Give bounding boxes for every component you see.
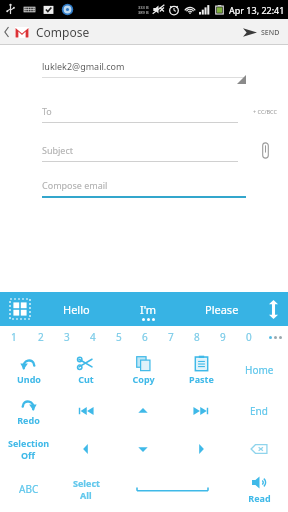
staticText: To — [42, 105, 52, 117]
staticText: 0 — [246, 330, 252, 344]
staticText: Off — [21, 449, 36, 461]
button[interactable]: SEND — [235, 23, 288, 42]
button[interactable]: + CC/BCC — [242, 96, 288, 126]
staticText: 5 — [116, 330, 122, 344]
staticText: Compose — [36, 24, 90, 40]
button[interactable]: Select — [57, 468, 115, 510]
staticText: + CC/BCC — [253, 108, 277, 115]
staticText: 4 — [90, 330, 96, 344]
staticText: 8 — [194, 330, 200, 344]
button[interactable]: Please — [185, 292, 258, 326]
button[interactable]: 6 — [132, 326, 158, 348]
staticText: Selection — [8, 437, 50, 449]
staticText: luklek2@gmail.com — [42, 60, 125, 72]
staticText: 333 B — [138, 5, 149, 10]
staticText: Apr 13, 22:41 — [229, 4, 285, 16]
button[interactable]: 5 — [106, 326, 132, 348]
button[interactable]: Space — [115, 468, 230, 510]
button[interactable]: luklek2@gmail.com — [42, 55, 246, 77]
staticText: 1 — [11, 330, 17, 344]
button[interactable]: Right — [172, 430, 230, 468]
button[interactable]: I'm — [112, 292, 185, 326]
button[interactable]: Home — [230, 348, 288, 392]
staticText: 2 — [38, 330, 44, 344]
staticText: SEND — [261, 28, 280, 38]
staticText: Copy — [132, 373, 155, 385]
staticText: All — [80, 489, 92, 501]
button[interactable]: Redo — [0, 392, 57, 430]
button[interactable]: Undo — [0, 348, 57, 392]
staticText: Compose email — [42, 179, 108, 191]
button[interactable]: 9 — [210, 326, 236, 348]
staticText: Paste — [189, 373, 214, 385]
button[interactable]: 1 — [0, 326, 27, 348]
staticText: 389 B — [138, 10, 149, 15]
button[interactable]: Keyboard layouts — [0, 292, 40, 326]
button[interactable]: Down — [114, 430, 172, 468]
staticText: Cut — [78, 373, 94, 385]
button[interactable]: Backspace — [230, 430, 288, 468]
staticText: Undo — [17, 373, 41, 385]
button[interactable]: Selection — [0, 430, 57, 468]
button[interactable]: Hello — [40, 292, 112, 326]
staticText: 6 — [142, 330, 148, 344]
staticText: Please — [205, 302, 239, 317]
staticText: 3 — [64, 330, 70, 344]
button[interactable]: End — [230, 392, 288, 430]
button[interactable]: Paste — [172, 348, 230, 392]
button[interactable]: Skip back — [57, 392, 114, 430]
staticText: I'm — [140, 302, 157, 317]
button[interactable]: ABC — [0, 468, 57, 510]
button[interactable]: 8 — [184, 326, 210, 348]
button[interactable]: Attach file — [242, 135, 288, 165]
staticText: 9 — [220, 330, 226, 344]
staticText: Redo — [17, 414, 40, 426]
button[interactable]: 3 — [54, 326, 80, 348]
button[interactable]: Expand — [258, 292, 288, 326]
button[interactable]: Copy — [114, 348, 172, 392]
button[interactable]: Up — [114, 392, 172, 430]
button[interactable]: Navigate up — [0, 20, 96, 44]
staticText: Subject — [42, 144, 74, 156]
staticText: Select — [73, 477, 100, 489]
button[interactable]: Compose email — [42, 174, 246, 196]
button[interactable]: Left — [57, 430, 114, 468]
staticText: 7 — [168, 330, 174, 344]
staticText: ABC — [19, 482, 39, 496]
button[interactable]: Read — [230, 468, 288, 510]
button[interactable]: Cut — [57, 348, 114, 392]
button[interactable]: Skip forward — [172, 392, 230, 430]
button[interactable]: 4 — [80, 326, 106, 348]
staticText: End — [250, 404, 268, 418]
button[interactable]: 2 — [27, 326, 54, 348]
staticText: Read — [248, 492, 271, 504]
button[interactable]: 0 — [236, 326, 262, 348]
staticText: Hello — [63, 302, 90, 317]
staticText: Home — [245, 363, 274, 377]
button[interactable]: 7 — [158, 326, 184, 348]
button[interactable]: More — [262, 326, 288, 348]
